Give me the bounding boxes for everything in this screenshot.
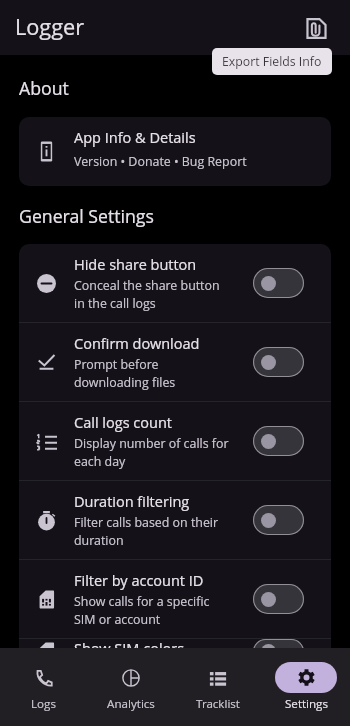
- button[interactable]: App Info & Details: [19, 117, 331, 186]
- staticText: App Info & Details: [74, 128, 196, 148]
- staticText: Logs: [31, 696, 56, 712]
- button[interactable]: Filter by account ID: [19, 560, 331, 638]
- staticText: Analytics: [107, 696, 155, 712]
- staticText: Settings: [285, 696, 328, 712]
- staticText: Show SIM colors: [74, 639, 185, 659]
- staticText: General Settings: [19, 204, 154, 228]
- button[interactable]: Show SIM colors: [19, 639, 331, 664]
- button[interactable]: Toggle setting: [253, 268, 304, 298]
- staticText: Show calls for a specific SIM or account: [74, 593, 231, 628]
- button[interactable]: Hide share button: [19, 244, 331, 322]
- button[interactable]: Toggle setting: [253, 505, 304, 535]
- staticText: Duration filtering: [74, 492, 190, 512]
- staticText: Conceal the share button in the call log…: [74, 277, 231, 312]
- button[interactable]: Export Fields Info: [296, 8, 336, 48]
- staticText: Tracklist: [196, 696, 240, 712]
- staticText: About: [19, 76, 69, 100]
- button[interactable]: Toggle setting: [253, 347, 304, 377]
- staticText: Export Fields Info: [222, 53, 322, 70]
- staticText: Prompt before downloading files: [74, 356, 231, 391]
- button[interactable]: Logs: [0, 648, 87, 712]
- button[interactable]: Duration filtering: [19, 481, 331, 559]
- button[interactable]: Tracklist: [174, 648, 262, 712]
- button[interactable]: Confirm download: [19, 323, 331, 401]
- button[interactable]: Toggle setting: [253, 584, 304, 614]
- staticText: Logger: [15, 12, 85, 42]
- button[interactable]: Toggle setting: [253, 426, 304, 456]
- button[interactable]: Analytics: [87, 648, 174, 712]
- button[interactable]: Toggle setting: [253, 639, 304, 664]
- staticText: Display number of calls for each day: [74, 435, 231, 470]
- button[interactable]: Call logs count: [19, 402, 331, 480]
- staticText: Version • Donate • Bug Report: [74, 153, 247, 170]
- staticText: Hide share button: [74, 255, 197, 275]
- staticText: Call logs count: [74, 413, 172, 433]
- staticText: Filter by account ID: [74, 571, 204, 591]
- staticText: Filter calls based on their duration: [74, 514, 231, 549]
- staticText: Confirm download: [74, 334, 200, 354]
- button[interactable]: Settings: [262, 648, 350, 712]
